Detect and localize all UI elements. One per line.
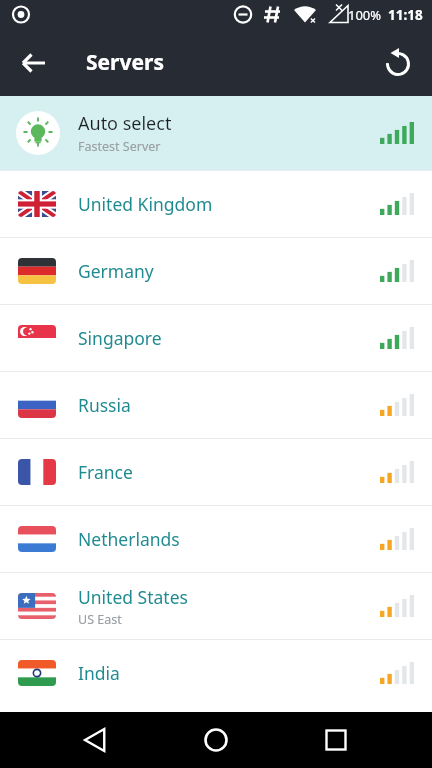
button[interactable]: France [0, 439, 432, 505]
button[interactable]: Back [72, 716, 120, 764]
staticText: 11:18 [388, 6, 423, 24]
button[interactable]: Germany [0, 238, 432, 304]
button[interactable]: Russia [0, 372, 432, 438]
button[interactable]: India [0, 640, 432, 706]
staticText: Russia [78, 393, 131, 417]
staticText: United States [78, 585, 188, 609]
button[interactable]: Back [12, 41, 56, 85]
button[interactable]: United States [0, 573, 432, 639]
staticText: Singapore [78, 326, 162, 350]
staticText: France [78, 460, 133, 484]
button[interactable]: Home [192, 716, 240, 764]
staticText: Germany [78, 259, 154, 283]
staticText: Fastest Server [78, 138, 161, 155]
staticText: Netherlands [78, 527, 180, 551]
button[interactable]: Singapore [0, 305, 432, 371]
staticText: United Kingdom [78, 192, 213, 216]
button[interactable]: Auto select [0, 96, 432, 170]
button[interactable]: Netherlands [0, 506, 432, 572]
button[interactable]: United Kingdom [0, 171, 432, 237]
staticText: US East [78, 611, 122, 628]
staticText: India [78, 661, 120, 685]
staticText: 100% [348, 6, 382, 24]
staticText: Auto select [78, 111, 172, 136]
staticText: Servers [86, 48, 164, 77]
button[interactable]: Recent apps [312, 716, 360, 764]
button[interactable]: Refresh [376, 41, 420, 85]
